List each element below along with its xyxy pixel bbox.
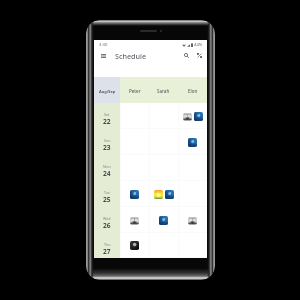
staticText: Thu [104, 242, 111, 247]
button[interactable]: Elon [178, 77, 207, 103]
button[interactable]: Sort [193, 49, 206, 62]
staticText: Sat [104, 112, 110, 117]
button[interactable]: Search [180, 49, 193, 62]
button[interactable]: Tue [94, 181, 120, 207]
button[interactable] [178, 207, 207, 233]
button[interactable]: Aug/Sep [94, 77, 120, 103]
staticText: Wed [103, 216, 111, 221]
staticText: 27 [103, 247, 111, 256]
staticText: 23 [103, 143, 111, 152]
button[interactable] [149, 207, 178, 233]
button[interactable] [120, 233, 149, 258]
button[interactable]: Sat [94, 103, 120, 129]
staticText: 44% [194, 42, 203, 48]
button[interactable] [178, 103, 207, 129]
staticText: Aug/Sep [99, 89, 116, 94]
button[interactable] [178, 129, 207, 155]
button[interactable]: Mon [94, 155, 120, 181]
button[interactable]: Open navigation menu [97, 49, 110, 62]
button[interactable] [120, 181, 149, 207]
button[interactable]: Sarah [149, 77, 178, 103]
button[interactable] [120, 207, 149, 233]
staticText: 25 [103, 195, 111, 204]
staticText: Sun [104, 138, 111, 143]
staticText: Mon [103, 164, 111, 169]
staticText: 26 [103, 221, 111, 230]
staticText: 24 [103, 169, 111, 178]
staticText: Elon [188, 88, 198, 94]
staticText: Peter [129, 88, 141, 94]
button[interactable]: Sun [94, 129, 120, 155]
staticText: 22 [103, 117, 111, 126]
staticText: Sarah [157, 88, 170, 94]
staticText: Tue [104, 190, 111, 195]
staticText: 3:30 [99, 42, 108, 48]
staticText: Schedule [115, 51, 147, 61]
button[interactable]: Wed [94, 207, 120, 233]
button[interactable]: Thu [94, 233, 120, 258]
button[interactable] [149, 181, 178, 207]
button[interactable]: Peter [120, 77, 149, 103]
